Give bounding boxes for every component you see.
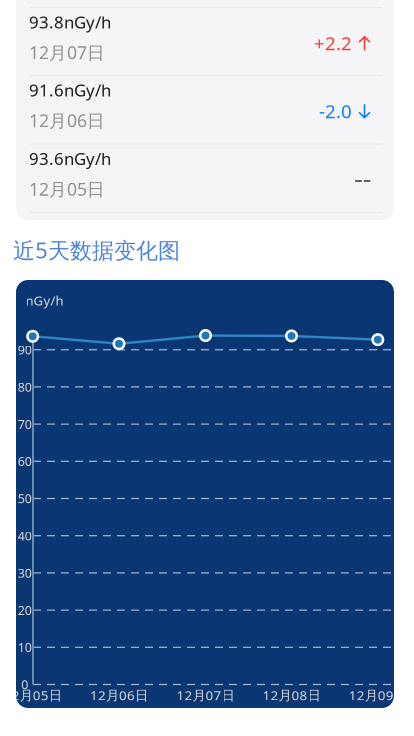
button[interactable]: 91.6nGy/h	[16, 75, 394, 143]
staticText: 91.6nGy/h	[29, 79, 111, 101]
staticText: 12月06日	[90, 686, 148, 704]
staticText: +2.2	[314, 30, 352, 56]
staticText: 10	[18, 639, 32, 656]
staticText: 近5天数据变化图	[13, 235, 180, 265]
staticText: nGy/h	[25, 291, 63, 309]
staticText: 12月05日	[29, 177, 105, 201]
staticText: 93.6nGy/h	[29, 147, 111, 170]
staticText: 60	[18, 453, 32, 470]
staticText: 90	[18, 341, 32, 358]
staticText: 12月07日	[176, 686, 234, 704]
staticText: 20	[18, 602, 32, 619]
staticText: 50	[18, 490, 32, 507]
staticText: 80	[18, 378, 32, 395]
staticText: 30	[18, 564, 32, 581]
staticText: 0	[21, 676, 28, 693]
button[interactable]: 93.8nGy/h	[16, 7, 394, 75]
staticText: 93.8nGy/h	[29, 11, 111, 33]
staticText: -2.0	[319, 98, 352, 124]
staticText: 12月08日	[262, 686, 320, 704]
staticText: 12月05日	[4, 686, 62, 704]
staticText: 70	[18, 416, 32, 433]
staticText: 40	[18, 527, 32, 544]
staticText: 12月06日	[29, 108, 105, 132]
staticText: 12月09日	[349, 686, 407, 704]
staticText: 12月07日	[29, 40, 105, 64]
button[interactable]: 93.6nGy/h	[16, 143, 394, 211]
